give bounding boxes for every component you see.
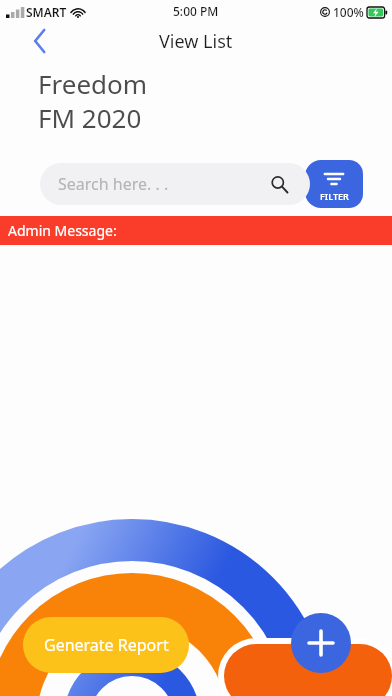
button[interactable] [224, 644, 392, 696]
button[interactable]: Back [24, 25, 56, 57]
staticText: FILTER [320, 190, 349, 202]
button[interactable]: Generate Report [23, 617, 189, 673]
staticText: Generate Report [44, 634, 169, 656]
button[interactable]: Search here. . . [40, 163, 310, 205]
staticText: Search here. . . [58, 173, 169, 195]
staticText: 100% [333, 4, 364, 20]
staticText: SMART [26, 4, 67, 20]
staticText: Freedom FM 2020 [38, 66, 148, 135]
button[interactable]: FILTER [305, 160, 363, 208]
staticText: View List [159, 29, 233, 54]
staticText: Admin Message: [8, 221, 117, 240]
button[interactable]: Add [291, 613, 351, 673]
staticText: 5:00 PM [173, 3, 219, 19]
